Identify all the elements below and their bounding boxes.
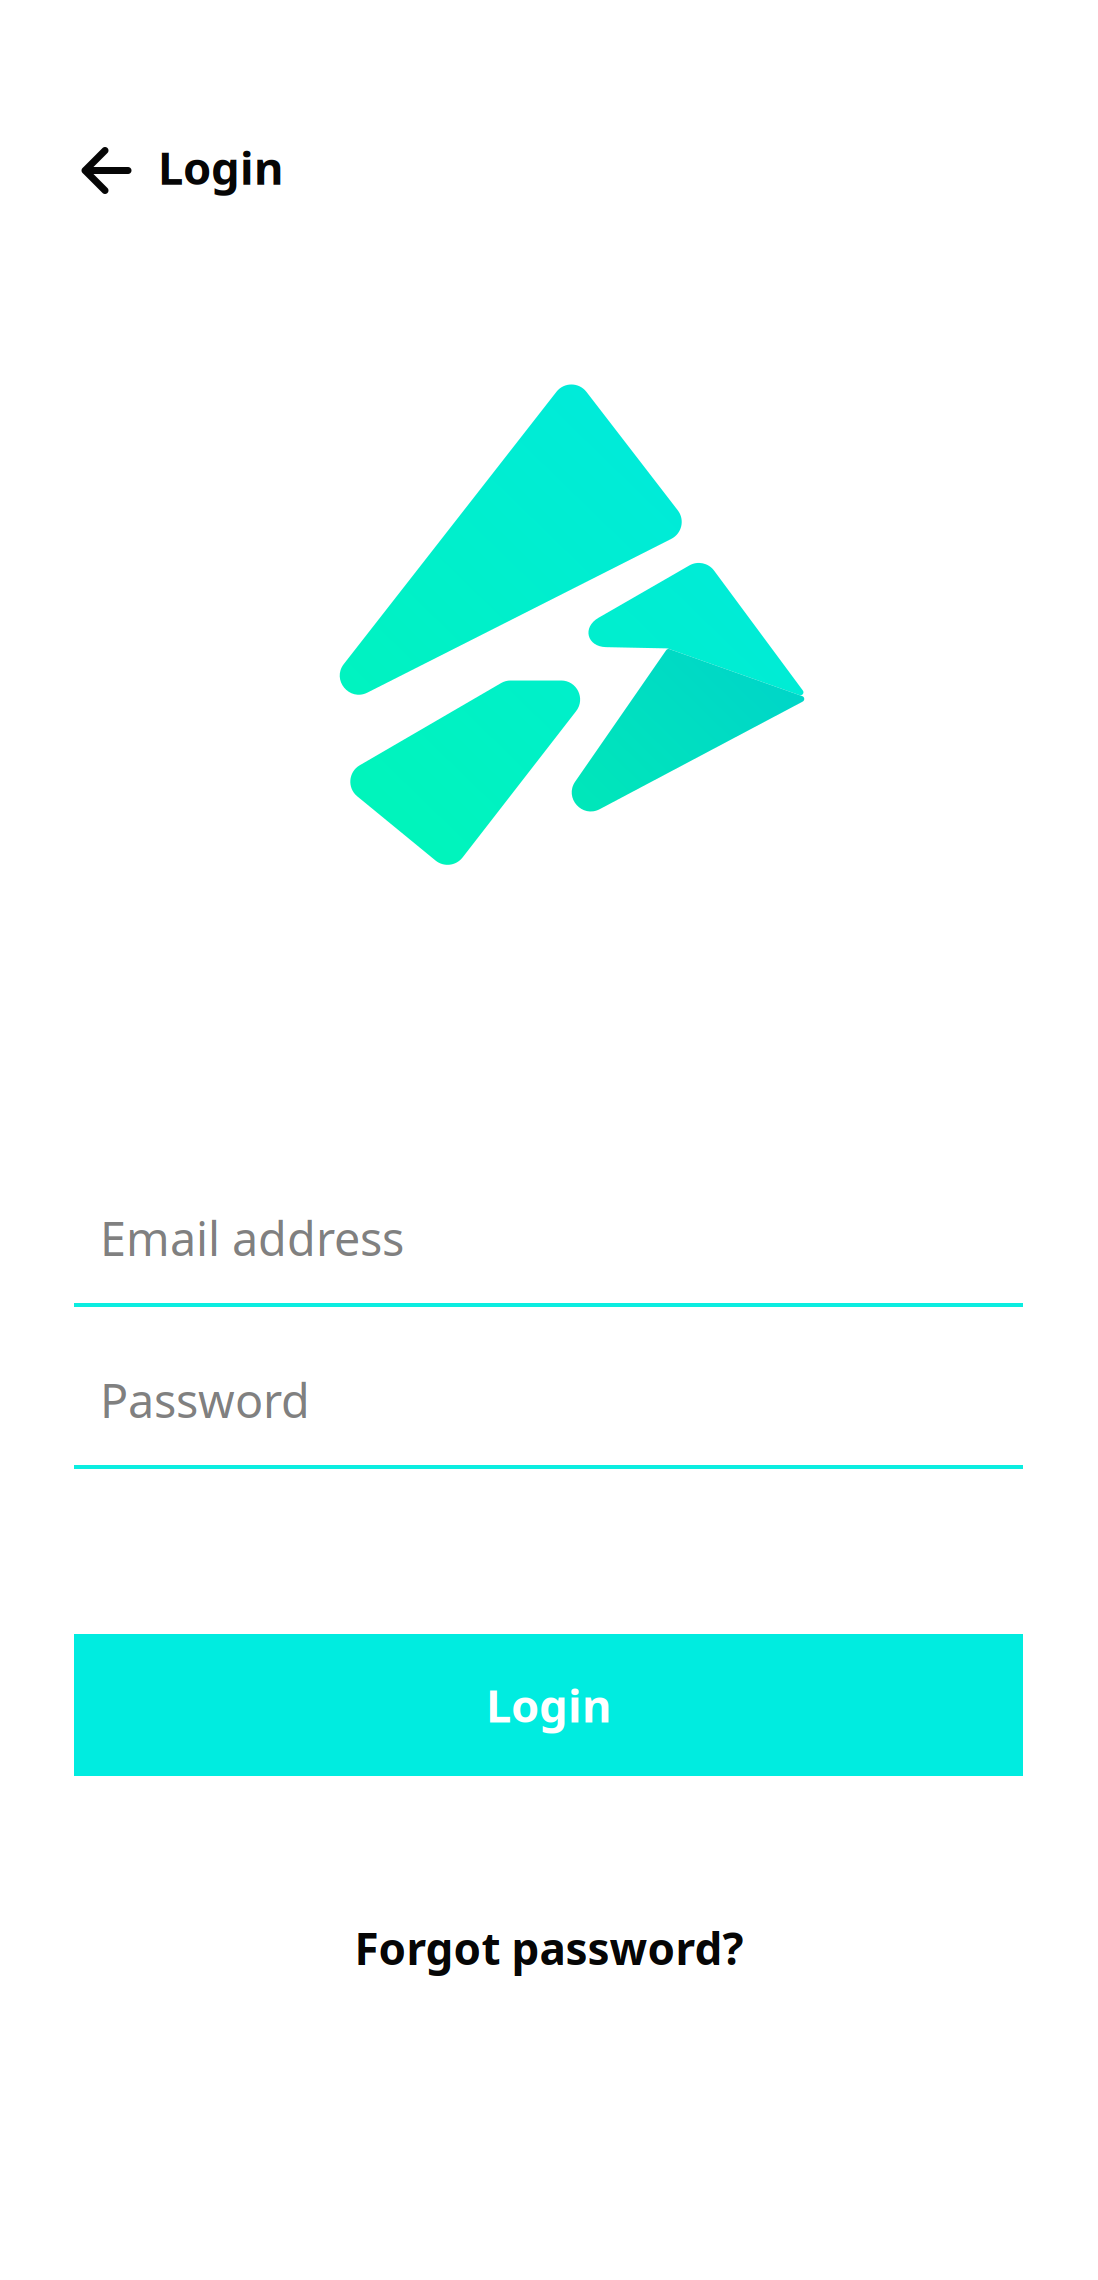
button[interactable]: Forgot password? <box>0 1913 1098 1983</box>
staticText: Password <box>100 1369 310 1431</box>
staticText: Email address <box>100 1207 404 1269</box>
button[interactable]: Back <box>69 123 295 211</box>
button[interactable]: Login <box>74 1634 1023 1776</box>
staticText: Forgot password? <box>354 1919 743 1977</box>
staticText: Login <box>158 137 283 197</box>
staticText: Login <box>486 1675 611 1735</box>
